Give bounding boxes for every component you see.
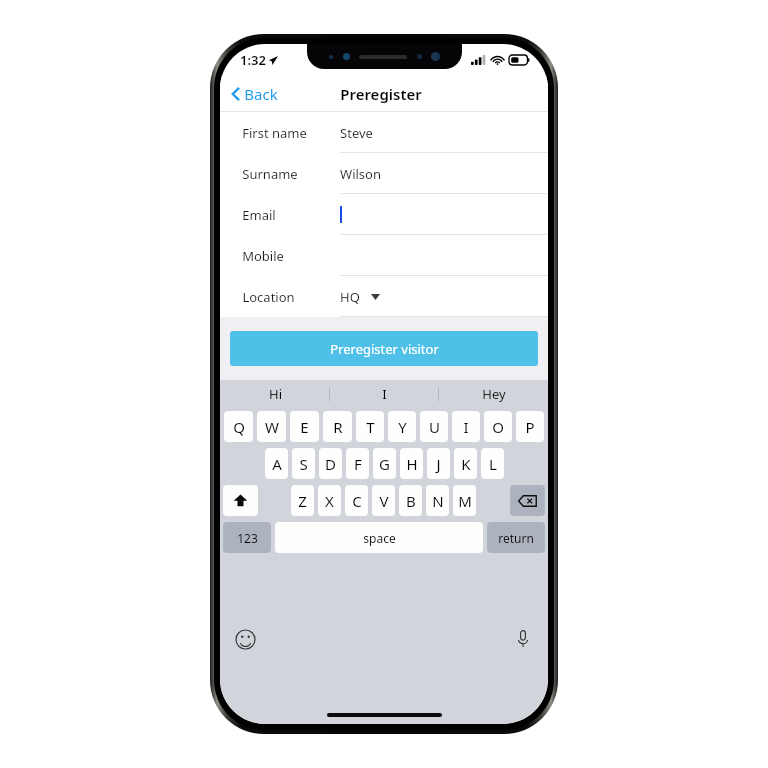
button[interactable]: Preregister visitor bbox=[230, 331, 538, 366]
staticText: G bbox=[379, 454, 390, 474]
button[interactable]: V bbox=[372, 485, 395, 516]
staticText: 1:32 bbox=[240, 51, 266, 69]
staticText: N bbox=[432, 491, 444, 511]
staticText: First name bbox=[242, 124, 307, 142]
button[interactable]: U bbox=[420, 411, 448, 442]
button[interactable]: D bbox=[319, 448, 342, 479]
staticText: Mobile bbox=[242, 247, 284, 265]
button[interactable]: R bbox=[323, 411, 352, 442]
button[interactable]: space bbox=[275, 522, 483, 553]
staticText: W bbox=[265, 417, 279, 437]
button[interactable]: I bbox=[452, 411, 480, 442]
button[interactable]: E bbox=[290, 411, 319, 442]
button[interactable]: W bbox=[257, 411, 286, 442]
button[interactable]: F bbox=[346, 448, 369, 479]
button[interactable]: Email bbox=[220, 194, 548, 235]
staticText: D bbox=[325, 454, 336, 474]
staticText: H bbox=[406, 454, 418, 474]
staticText: Q bbox=[233, 417, 245, 437]
staticText: V bbox=[379, 491, 389, 511]
button[interactable]: S bbox=[292, 448, 315, 479]
staticText: Z bbox=[298, 491, 307, 511]
button[interactable]: Location bbox=[220, 276, 548, 317]
staticText: O bbox=[492, 417, 504, 437]
button[interactable]: H bbox=[400, 448, 423, 479]
staticText: K bbox=[461, 454, 471, 474]
button[interactable]: Emoji bbox=[230, 624, 260, 654]
staticText: Y bbox=[398, 417, 407, 437]
staticText: 123 bbox=[237, 530, 258, 546]
button[interactable]: Mobile bbox=[220, 235, 548, 276]
button[interactable]: C bbox=[345, 485, 368, 516]
staticText: Steve bbox=[340, 124, 373, 142]
staticText: E bbox=[300, 417, 309, 437]
staticText: Wilson bbox=[340, 165, 381, 183]
staticText: S bbox=[299, 454, 308, 474]
button[interactable]: Hey bbox=[439, 380, 548, 408]
staticText: F bbox=[354, 454, 362, 474]
staticText: return bbox=[498, 530, 534, 546]
staticText: T bbox=[366, 417, 375, 437]
staticText: L bbox=[489, 454, 497, 474]
button[interactable]: I bbox=[330, 380, 439, 408]
button[interactable]: Q bbox=[224, 411, 253, 442]
staticText: space bbox=[363, 530, 396, 546]
button[interactable]: J bbox=[427, 448, 450, 479]
button[interactable]: Back bbox=[220, 80, 288, 108]
button[interactable]: A bbox=[265, 448, 288, 479]
staticText: I bbox=[382, 385, 387, 403]
staticText: HQ bbox=[340, 288, 360, 306]
staticText: Preregister bbox=[340, 84, 422, 104]
staticText: Hi bbox=[269, 385, 282, 403]
button[interactable]: G bbox=[373, 448, 396, 479]
button[interactable]: N bbox=[426, 485, 449, 516]
button[interactable]: X bbox=[318, 485, 341, 516]
staticText: C bbox=[352, 491, 362, 511]
button[interactable]: Z bbox=[291, 485, 314, 516]
staticText: Email bbox=[242, 206, 276, 224]
staticText: B bbox=[406, 491, 416, 511]
button[interactable]: First name bbox=[220, 112, 548, 153]
button[interactable]: O bbox=[484, 411, 512, 442]
button[interactable]: 123 bbox=[223, 522, 271, 553]
button[interactable]: P bbox=[516, 411, 544, 442]
button[interactable]: T bbox=[356, 411, 384, 442]
staticText: M bbox=[458, 491, 472, 511]
button[interactable]: Shift bbox=[223, 485, 258, 516]
button[interactable]: L bbox=[481, 448, 504, 479]
button[interactable]: Surname bbox=[220, 153, 548, 194]
button[interactable]: Hi bbox=[220, 380, 330, 408]
staticText: J bbox=[436, 454, 441, 474]
staticText: I bbox=[463, 417, 469, 437]
button[interactable]: Delete bbox=[510, 485, 545, 516]
staticText: U bbox=[429, 417, 440, 437]
staticText: Hey bbox=[482, 385, 506, 403]
button[interactable]: return bbox=[487, 522, 545, 553]
staticText: X bbox=[325, 491, 334, 511]
button[interactable]: M bbox=[453, 485, 476, 516]
staticText: R bbox=[333, 417, 343, 437]
staticText: A bbox=[272, 454, 282, 474]
button[interactable]: B bbox=[399, 485, 422, 516]
button[interactable]: Y bbox=[388, 411, 416, 442]
staticText: Location bbox=[242, 288, 295, 306]
button[interactable]: Dictation bbox=[508, 624, 538, 654]
staticText: Surname bbox=[242, 165, 298, 183]
staticText: P bbox=[525, 417, 535, 437]
staticText: Back bbox=[244, 84, 278, 104]
staticText: Preregister visitor bbox=[330, 340, 439, 358]
button[interactable]: K bbox=[454, 448, 477, 479]
